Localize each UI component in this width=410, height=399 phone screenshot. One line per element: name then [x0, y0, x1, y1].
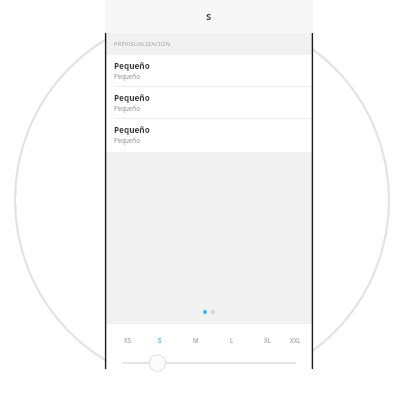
button[interactable]: XS	[118, 334, 138, 346]
button[interactable]: Tamaño de fuente	[105, 352, 313, 374]
staticText: XL	[264, 336, 271, 344]
button[interactable]: M	[186, 334, 206, 346]
staticText: XS	[124, 336, 132, 344]
button[interactable]: L	[222, 334, 242, 346]
button[interactable]: Pequeño	[105, 119, 313, 150]
staticText: Pequeño	[114, 124, 150, 135]
staticText: XXL	[290, 336, 301, 344]
staticText: L	[230, 336, 234, 344]
button[interactable]: S	[150, 334, 170, 346]
staticText: PREVISUALIZACIÓN	[114, 40, 171, 48]
button[interactable]: XXL	[285, 334, 305, 346]
button[interactable]: XL	[257, 334, 277, 346]
button[interactable]: Pequeño	[105, 55, 313, 86]
staticText: M	[193, 336, 199, 344]
staticText: Pequeño	[114, 60, 150, 71]
staticText: Pequeño	[114, 92, 150, 103]
staticText: S	[158, 336, 162, 344]
button[interactable]: Pequeño	[105, 87, 313, 118]
staticText: S	[206, 10, 212, 23]
staticText: Pequeño	[114, 104, 140, 112]
staticText: Pequeño	[114, 136, 140, 144]
staticText: Pequeño	[114, 72, 140, 80]
